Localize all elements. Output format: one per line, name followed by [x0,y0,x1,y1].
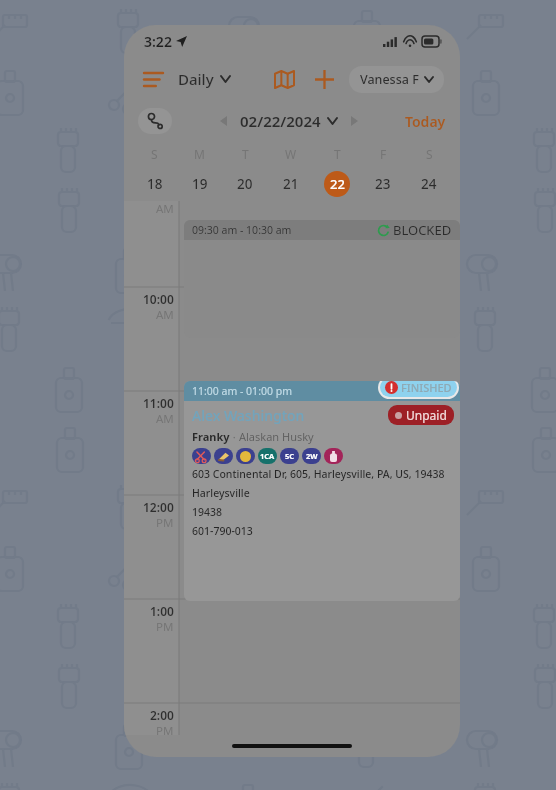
button[interactable]: Vanessa F [349,66,444,93]
staticText: 18 [147,175,163,193]
staticText: Alaskan Husky [239,429,314,444]
staticText: 22 [330,175,345,193]
staticText: M [194,146,205,162]
staticText: 19 [192,175,208,193]
staticText: T [334,146,341,162]
staticText: 02/22/2024 [240,111,321,131]
staticText: T [242,146,249,162]
staticText: PM [156,723,174,739]
button[interactable]: 19 [187,171,213,197]
staticText: 2W [306,451,318,461]
staticText: F [380,146,387,162]
button[interactable]: Previous day [212,110,234,132]
staticText: Franky [192,429,230,444]
staticText: 11:00 [143,395,174,411]
button[interactable]: 21 [278,171,304,197]
staticText: 19438 [192,505,223,519]
staticText: BLOCKED [393,221,452,239]
staticText: Alex Washington [192,406,305,425]
button[interactable]: 24 [416,171,442,197]
staticText: Unpaid [406,407,447,423]
button[interactable]: 23 [370,171,396,197]
staticText: 1CA [260,451,275,461]
staticText: Vanessa F [360,71,419,88]
staticText: · [230,429,239,444]
button[interactable]: 11:00 am - 01:00 pm [184,381,460,601]
staticText: 12:00 [143,499,174,515]
button[interactable]: 20 [232,171,258,197]
staticText: 1:00 [150,603,174,619]
staticText: 11:00 am - 01:00 pm [192,384,292,398]
staticText: AM [156,201,174,217]
staticText: 2:00 [150,707,174,723]
staticText: 09:30 am - 10:30 am [192,223,292,237]
button[interactable]: Map [269,64,299,94]
button[interactable]: Next day [343,110,365,132]
button[interactable]: Add [309,64,339,94]
button[interactable]: 09:30 am - 10:30 am [184,220,460,338]
staticText: Today [405,112,446,131]
button[interactable]: Unpaid [388,405,454,425]
button[interactable]: Route [138,108,172,134]
button[interactable]: 02/22/2024 [240,111,337,131]
staticText: 603 Continental Dr, 605, Harleysville, P… [192,467,445,481]
staticText: 23 [375,175,391,193]
staticText: AM [156,307,174,323]
staticText: 20 [237,175,253,193]
button[interactable]: 22 [324,171,350,197]
staticText: S [151,146,158,162]
button[interactable]: Menu [140,66,166,92]
staticText: PM [156,515,174,531]
staticText: 10:00 [143,291,174,307]
button[interactable]: 18 [142,171,168,197]
staticText: S [426,146,433,162]
staticText: 21 [283,175,299,193]
staticText: 601-790-013 [192,524,253,538]
staticText: PM [156,619,174,635]
staticText: W [285,146,297,162]
staticText: Daily [178,69,214,89]
button[interactable]: Today [405,112,446,131]
staticText: 24 [421,175,437,193]
staticText: 5C [285,451,295,461]
button[interactable]: Daily [178,69,230,89]
staticText: AM [156,411,174,427]
staticText: FINISHED [401,381,452,395]
button[interactable]: FINISHED [380,381,457,397]
staticText: Harleysville [192,486,250,500]
staticText: 3:22 [144,32,172,51]
